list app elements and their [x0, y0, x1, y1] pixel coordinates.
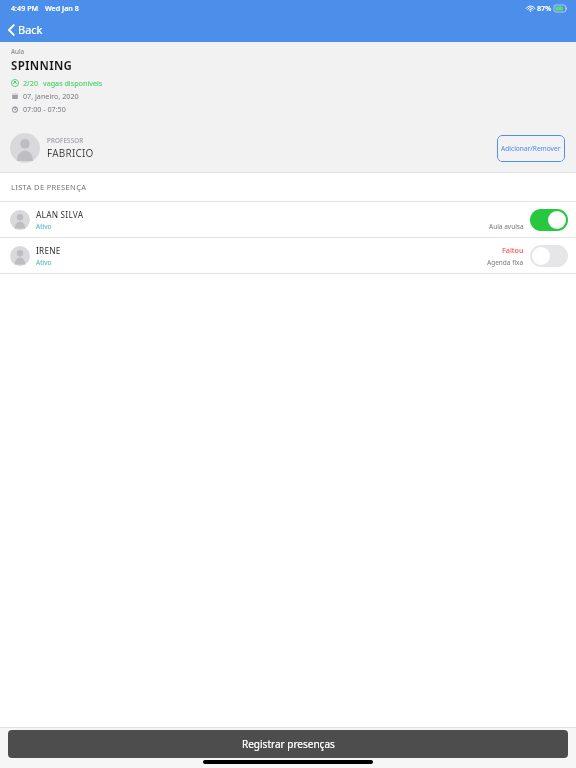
staticText: Aula — [11, 47, 25, 56]
staticText: Wed Jan 8 — [45, 3, 79, 13]
button[interactable]: ALAN SILVA — [0, 202, 576, 237]
staticText: LISTA DE PRESENÇA — [11, 182, 87, 192]
staticText: Registrar presenças — [242, 737, 335, 751]
staticText: vagas disponíveis — [43, 78, 103, 88]
staticText: 4:49 PM — [11, 3, 39, 13]
staticText: 2/20 — [23, 78, 39, 88]
staticText: FABRICIO — [47, 146, 94, 160]
staticText: Faltou — [502, 245, 524, 255]
button[interactable]: Back — [5, 18, 46, 41]
staticText: Back — [18, 22, 43, 37]
staticText: IRENE — [36, 245, 61, 256]
button[interactable]: Registrar presenças — [8, 730, 568, 758]
button[interactable]: Presente — [530, 209, 568, 231]
button[interactable]: IRENE — [0, 238, 576, 273]
staticText: 07, janeiro, 2020 — [23, 91, 79, 101]
staticText: ALAN SILVA — [36, 209, 84, 220]
staticText: SPINNING — [11, 58, 73, 74]
staticText: Ativo — [36, 222, 52, 231]
button[interactable]: Adicionar/Remover — [497, 135, 565, 162]
staticText: Agenda fixa — [487, 258, 524, 267]
button[interactable]: Ausente — [530, 245, 568, 267]
staticText: Adicionar/Remover — [501, 144, 561, 153]
staticText: PROFESSOR — [47, 136, 84, 144]
staticText: Aula avulsa — [489, 222, 524, 231]
staticText: 87% — [537, 3, 552, 13]
staticText: Ativo — [36, 258, 52, 267]
staticText: 07:00 - 07:50 — [23, 104, 66, 114]
